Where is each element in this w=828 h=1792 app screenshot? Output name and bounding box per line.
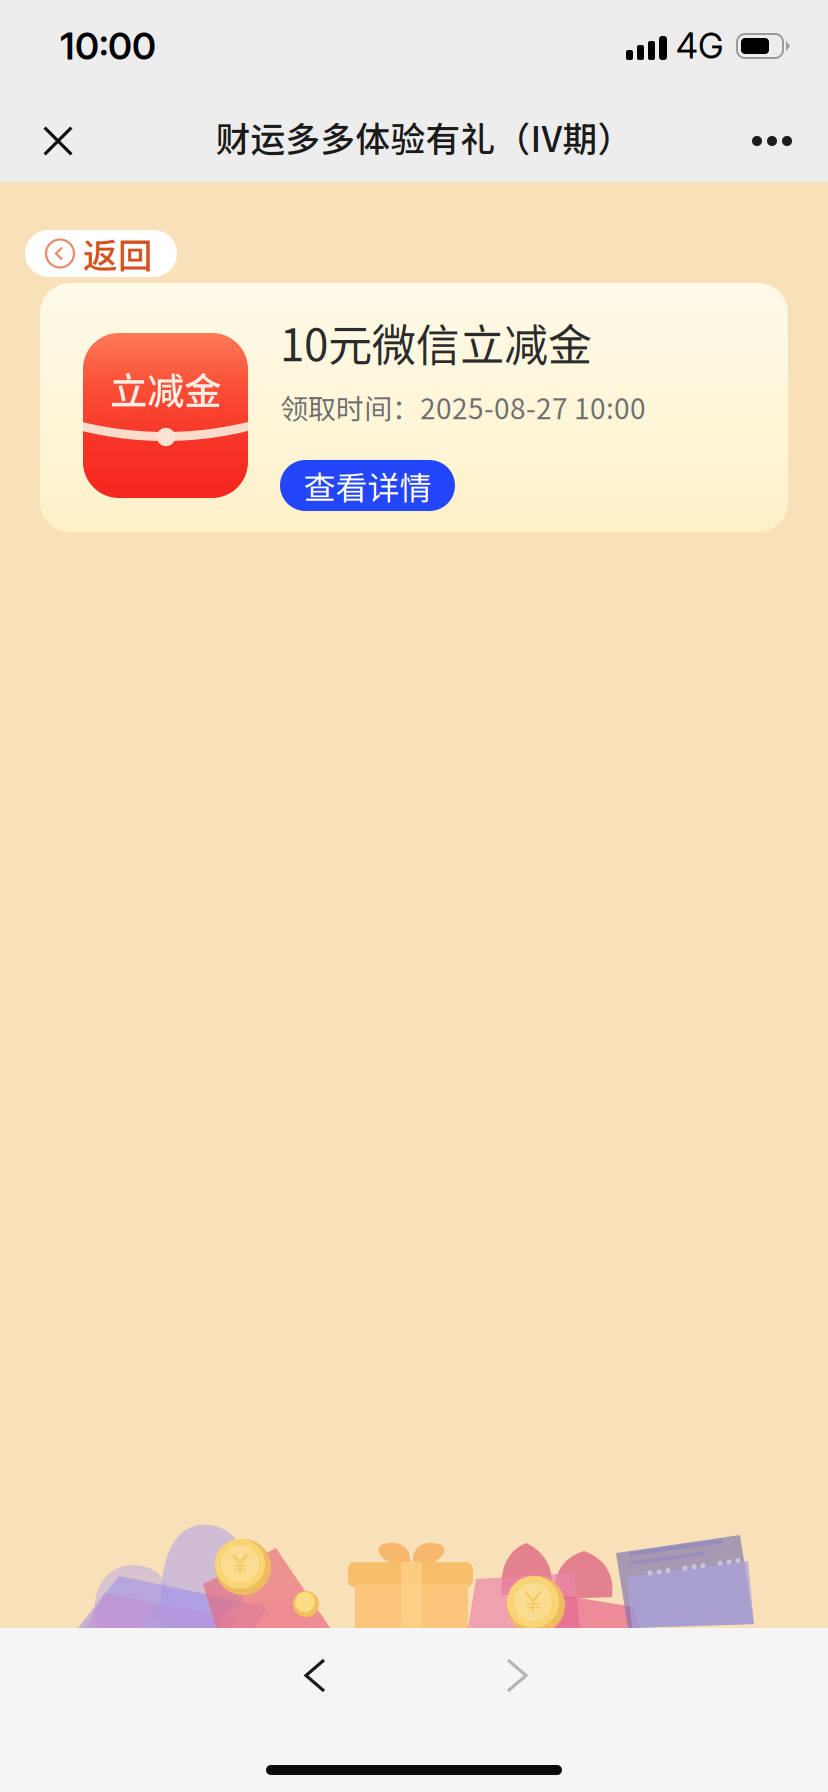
staticText: 10:00 [60, 23, 156, 69]
staticText: 财运多多体验有礼（IV期） [215, 112, 632, 162]
staticText: 立减金 [110, 361, 221, 416]
button[interactable]: 查看详情 [280, 460, 455, 511]
button[interactable]: Close [22, 105, 94, 177]
staticText: 返回 [83, 228, 153, 279]
staticText: 4G [676, 25, 724, 67]
button[interactable]: Back [278, 1638, 352, 1712]
staticText: 领取时间：2025-08-27 10:00 [280, 387, 646, 427]
button[interactable]: Forward [480, 1638, 554, 1712]
staticText: 查看详情 [303, 462, 431, 509]
button[interactable]: 返回 [25, 230, 177, 277]
button[interactable]: More options [736, 105, 808, 177]
staticText: 10元微信立减金 [280, 310, 592, 374]
